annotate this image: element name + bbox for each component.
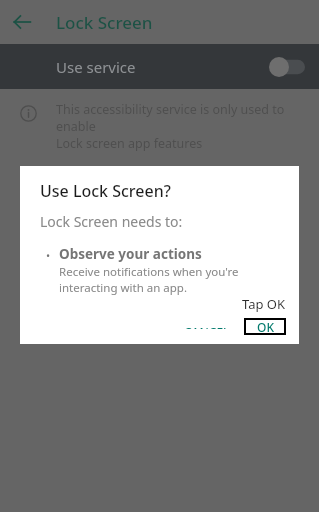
staticText: Lock Screen — [56, 11, 153, 34]
staticText: OK — [257, 319, 274, 335]
button[interactable]: CANCEL — [176, 318, 238, 335]
button[interactable]: Use service — [0, 44, 319, 89]
staticText: Tap OK — [20, 295, 285, 313]
button[interactable]: Back — [0, 0, 44, 44]
staticText: Use Lock Screen? — [40, 180, 171, 202]
staticText: Lock Screen needs to: — [40, 212, 183, 231]
staticText: This accessibility service is only used … — [56, 101, 303, 152]
staticText: Receive notifications when you're intera… — [59, 264, 239, 295]
button[interactable]: Use service toggle — [269, 57, 305, 77]
staticText: Use service — [56, 57, 136, 77]
staticText: CANCEL — [184, 324, 230, 329]
staticText: • — [46, 248, 51, 263]
button[interactable]: OK — [244, 318, 286, 335]
staticText: Observe your actions — [59, 245, 202, 263]
